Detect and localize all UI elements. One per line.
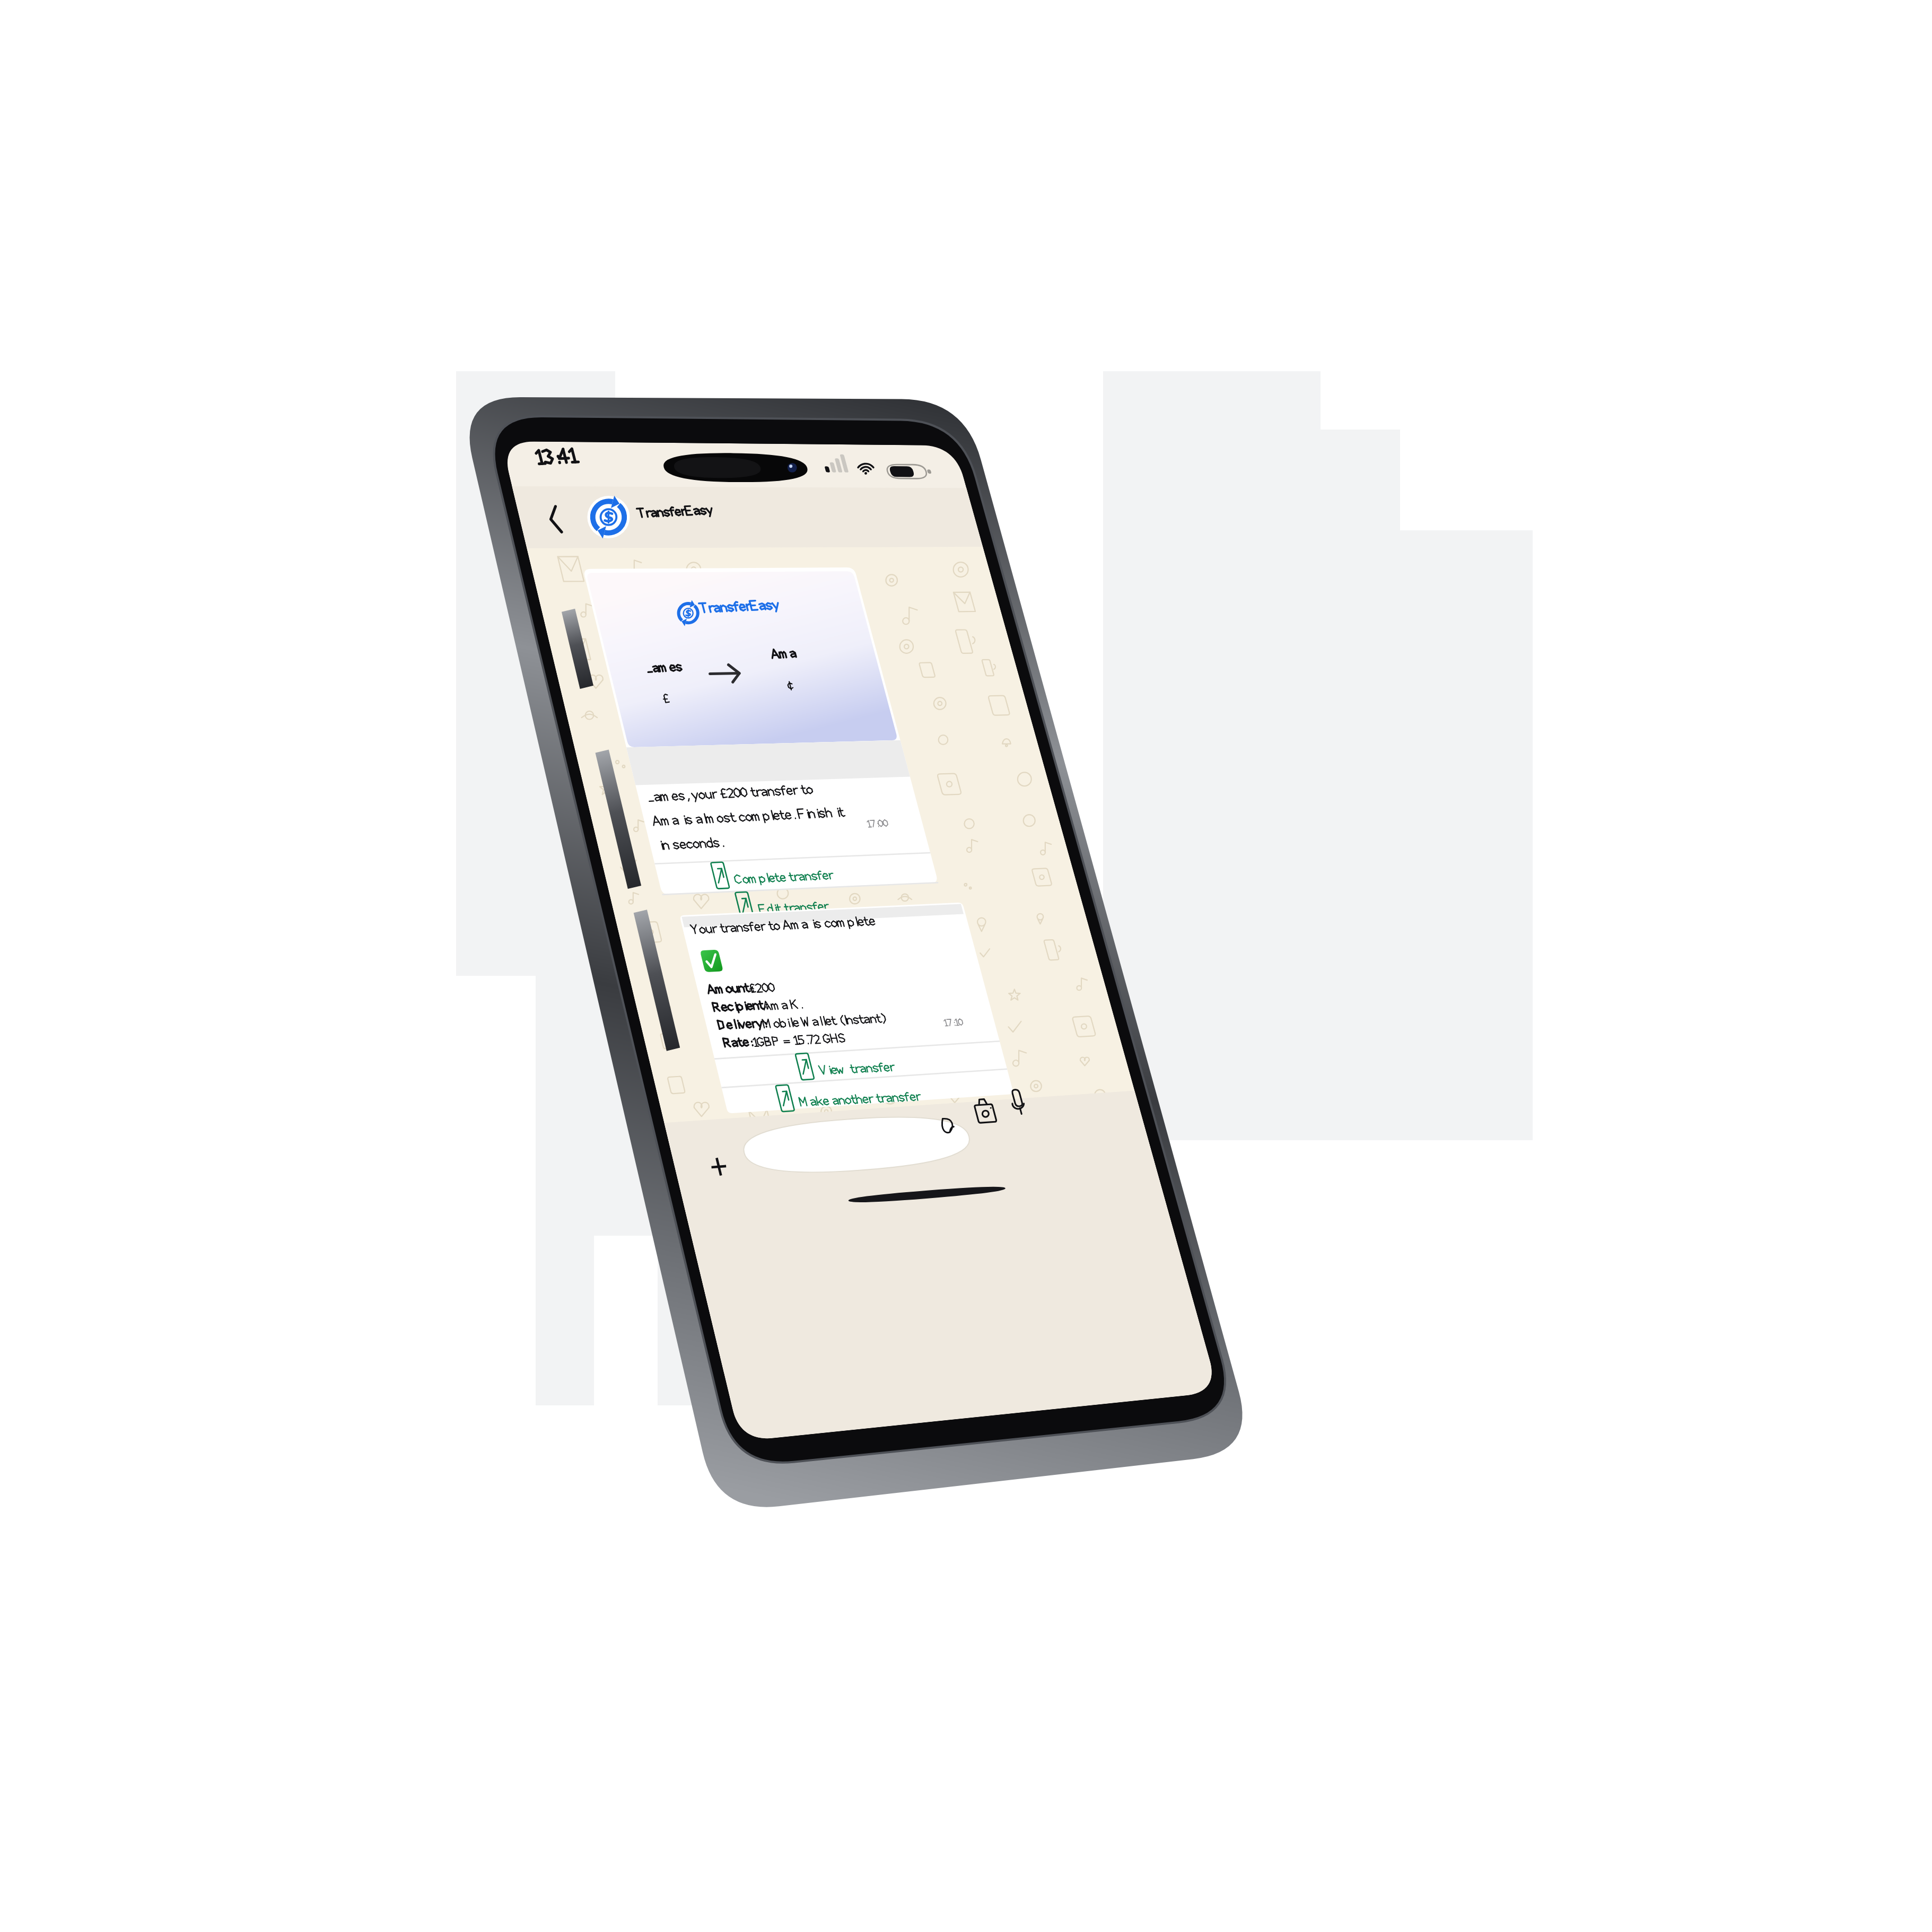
button[interactable]: View transfer: [757, 1213, 1250, 1279]
button[interactable]: Back: [487, 483, 593, 541]
button[interactable]: Camera: [1156, 1291, 1237, 1353]
button[interactable]: Complete transfer: [634, 885, 1126, 950]
button[interactable]: Make another transfer: [784, 1267, 1277, 1333]
button[interactable]: Voice message: [1221, 1279, 1294, 1341]
button[interactable]: Type a message: [788, 1329, 1184, 1398]
button[interactable]: Edit transfer: [661, 939, 1153, 1004]
button[interactable]: Attach: [711, 1325, 789, 1387]
button[interactable]: TransferEasy contact: [580, 479, 985, 560]
